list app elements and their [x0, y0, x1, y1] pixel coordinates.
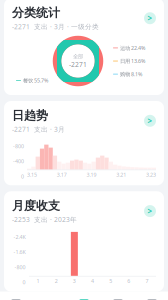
staticText: 全部 [73, 53, 83, 60]
staticText: 3 [73, 277, 76, 285]
button[interactable]: 我的 [135, 292, 168, 300]
staticText: 月度收支 [12, 198, 60, 213]
staticText: 4 [91, 277, 94, 285]
staticText: > [147, 206, 152, 216]
staticText: 3.15 [27, 171, 37, 178]
staticText: 7 [145, 277, 148, 285]
staticText: -400 [13, 158, 24, 165]
staticText: -2271 支出 · 3月 · 一级分类 [12, 22, 99, 31]
staticText: 5 [109, 277, 112, 285]
staticText: 运动 22.4% [120, 44, 145, 51]
staticText: 餐饮 55.7% [23, 77, 48, 84]
staticText: -800 [14, 264, 25, 271]
staticText: -2271 支出 · 3月 [12, 125, 65, 134]
staticText: -2.4K [13, 233, 25, 240]
staticText: 日趋势 [12, 108, 48, 123]
staticText: 0 [22, 279, 25, 286]
staticText: 3.21 [116, 171, 126, 178]
button[interactable]: 查看详情 [144, 12, 156, 24]
button[interactable]: 更多 [101, 292, 135, 300]
staticText: -2271 [69, 60, 87, 69]
staticText: 0 [21, 173, 24, 180]
staticText: 日用 13.6% [120, 57, 145, 65]
staticText: 2 [55, 277, 58, 285]
staticText: 3.19 [86, 171, 96, 178]
staticText: -800 [13, 143, 24, 150]
button[interactable]: 查看详情 [144, 115, 156, 127]
staticText: > [147, 13, 152, 23]
staticText: > [147, 115, 152, 126]
staticText: 6 [127, 277, 130, 285]
staticText: -2253 支出 · 2023年 [12, 215, 77, 224]
staticText: 分类统计 [12, 5, 60, 20]
staticText: 3.17 [57, 171, 67, 178]
staticText: 1 [37, 277, 40, 285]
staticText: 3.23 [146, 171, 156, 178]
button[interactable]: 查看详情 [144, 205, 156, 217]
button[interactable]: 统计 [67, 292, 101, 300]
staticText: -1.6K [13, 248, 25, 256]
staticText: 购物 8.1% [120, 71, 142, 78]
button[interactable]: 首页 [0, 292, 33, 300]
